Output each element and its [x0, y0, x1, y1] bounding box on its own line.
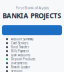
staticText: Account Summary [11, 37, 33, 41]
button[interactable]: Deposit Products [0, 57, 64, 61]
staticText: Deposit Products [11, 57, 35, 61]
button[interactable]: Settings [0, 69, 64, 72]
button[interactable]: Loan Accounts [0, 53, 64, 57]
staticText: Branch Locator [11, 65, 30, 69]
button[interactable]: Investments [0, 61, 64, 65]
button[interactable]: Branch Locator [0, 65, 64, 69]
staticText: Loan Accounts [11, 53, 30, 57]
staticText: Investments [11, 61, 27, 65]
button[interactable]: Account Summary [0, 37, 64, 41]
button[interactable]: Card Services [0, 41, 64, 45]
staticText: BANKIA PROJECTS [2, 11, 61, 20]
button[interactable]: Bills Payment [0, 49, 64, 53]
staticText: Card Services [11, 41, 28, 45]
staticText: Fund Transfer [11, 45, 29, 49]
staticText: First Bank of Ayala [15, 5, 48, 10]
staticText: Settings [11, 69, 22, 72]
staticText: Bills Payment [11, 49, 29, 53]
button[interactable]: Fund Transfer [0, 45, 64, 49]
